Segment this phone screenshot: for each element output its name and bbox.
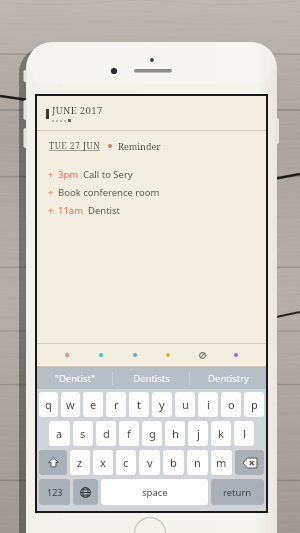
button[interactable]: e [83, 392, 103, 417]
button[interactable]: w [61, 392, 80, 417]
staticText: i [207, 397, 210, 412]
staticText: s [80, 426, 86, 441]
button[interactable]: Colour tag [158, 345, 178, 365]
button[interactable]: b [163, 450, 184, 475]
staticText: space [142, 486, 168, 499]
staticText: k [218, 426, 224, 441]
staticText: q [45, 397, 52, 412]
button[interactable]: Colour tag [91, 345, 111, 365]
staticText: o [228, 397, 235, 412]
button[interactable]: Dentistry [190, 367, 266, 389]
staticText: + [48, 186, 54, 198]
button[interactable]: Change keyboard [73, 479, 98, 505]
staticText: g [149, 426, 156, 441]
staticText: x [100, 455, 106, 470]
staticText: w [66, 397, 75, 412]
staticText: 123 [47, 486, 63, 498]
button[interactable]: Colour tag [226, 345, 246, 365]
button[interactable]: o [221, 392, 241, 417]
staticText: return [223, 486, 252, 499]
button[interactable]: c [116, 450, 136, 475]
staticText: b [170, 455, 177, 470]
button[interactable]: Backspace [235, 450, 264, 475]
button[interactable]: g [142, 421, 162, 446]
button[interactable]: s [73, 421, 93, 446]
button[interactable]: No colour [192, 345, 212, 365]
staticText: TUE 27 JUN [49, 140, 101, 152]
staticText: m [216, 455, 227, 470]
staticText: Dentist [88, 204, 121, 217]
staticText: j [197, 426, 200, 441]
staticText: Dentistry [208, 372, 249, 385]
button[interactable]: u [175, 392, 195, 417]
staticText: p [251, 397, 258, 412]
staticText: Reminder [118, 140, 161, 152]
staticText: + [48, 204, 54, 216]
staticText: Dentists [133, 372, 170, 385]
staticText: d [103, 426, 110, 441]
button[interactable]: TUE 27 JUN [37, 138, 266, 154]
staticText: 3pm [58, 168, 79, 181]
button[interactable]: Colour tag [57, 345, 77, 365]
staticText: 11am [58, 204, 84, 217]
staticText: a [56, 426, 63, 441]
staticText: u [182, 397, 189, 412]
button[interactable]: + [37, 165, 266, 183]
button[interactable]: return [211, 479, 264, 505]
button[interactable]: v [139, 450, 160, 475]
button[interactable]: j [188, 421, 208, 446]
button[interactable]: a [49, 421, 70, 446]
button[interactable]: n [187, 450, 208, 475]
staticText: + [48, 168, 54, 180]
button[interactable]: f [119, 421, 139, 446]
staticText: n [194, 455, 201, 470]
staticText: JUNE 2017 [52, 104, 103, 117]
staticText: f [127, 426, 131, 441]
button[interactable]: q [39, 392, 58, 417]
button[interactable]: Dentists [113, 367, 189, 389]
staticText: t [137, 397, 141, 412]
button[interactable]: + [37, 183, 266, 201]
button[interactable]: l [234, 421, 254, 446]
button[interactable]: z [70, 450, 90, 475]
staticText: z [77, 455, 83, 470]
button[interactable]: x [93, 450, 113, 475]
button[interactable]: m [211, 450, 232, 475]
staticText: "Dentist" [55, 372, 95, 385]
button[interactable]: i [198, 392, 218, 417]
staticText: c [123, 455, 129, 470]
button[interactable]: space [101, 479, 208, 505]
staticText: l [243, 426, 246, 441]
button[interactable]: + [37, 201, 266, 219]
staticText: e [90, 397, 97, 412]
staticText: h [172, 426, 179, 441]
staticText: r [114, 397, 119, 412]
button[interactable]: Shift [39, 450, 67, 475]
button[interactable]: p [244, 392, 264, 417]
button[interactable]: y [152, 392, 172, 417]
staticText: v [147, 455, 153, 470]
button[interactable]: r [106, 392, 126, 417]
button[interactable]: k [211, 421, 231, 446]
staticText: y [159, 397, 165, 412]
button[interactable]: t [129, 392, 149, 417]
staticText: Call to Sery [83, 168, 133, 181]
staticText: Book conference room [58, 186, 160, 199]
button[interactable]: 123 [39, 479, 70, 505]
button[interactable]: d [96, 421, 116, 446]
button[interactable]: JUNE 2017 [37, 96, 266, 130]
button[interactable]: Colour tag [125, 345, 145, 365]
button[interactable]: "Dentist" [37, 367, 112, 389]
button[interactable]: h [165, 421, 185, 446]
